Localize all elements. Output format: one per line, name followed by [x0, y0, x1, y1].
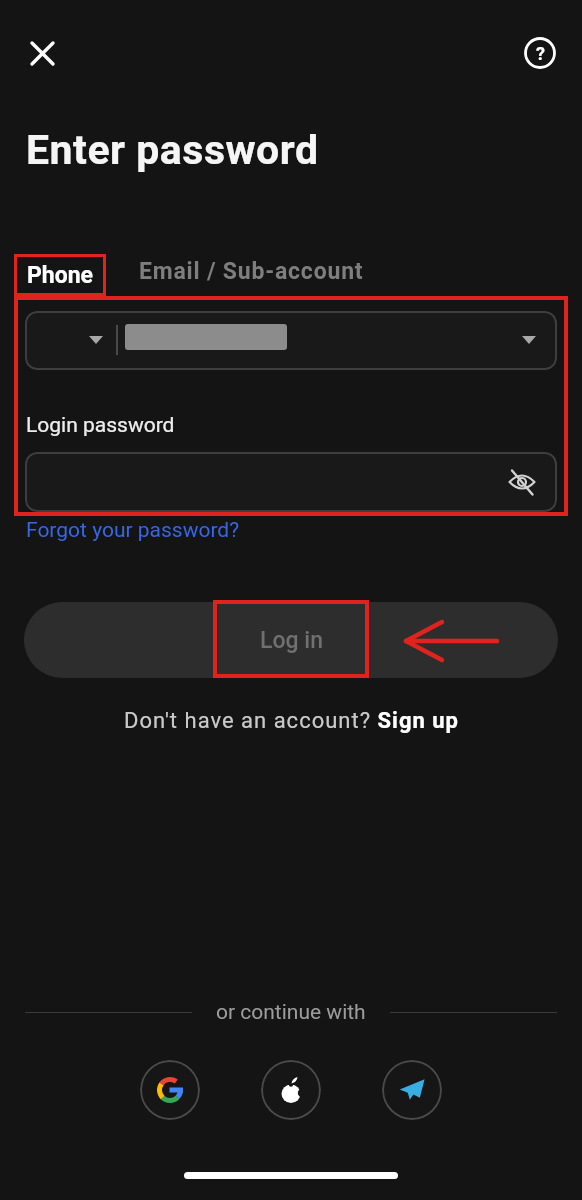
- staticText: Email / Sub-account: [139, 258, 364, 285]
- button[interactable]: ?: [522, 35, 558, 71]
- button[interactable]: Log in: [24, 602, 558, 678]
- button[interactable]: [140, 1060, 200, 1120]
- staticText: Log in: [260, 627, 323, 654]
- button[interactable]: Don't have an account? Sign up: [0, 708, 582, 734]
- staticText: Login password: [26, 413, 175, 438]
- button[interactable]: [25, 452, 557, 512]
- staticText: Forgot your password?: [26, 518, 240, 543]
- staticText: or continue with: [216, 1000, 366, 1024]
- staticText: Don't have an account? Sign up: [124, 708, 459, 734]
- button[interactable]: [261, 1060, 321, 1120]
- staticText: ?: [536, 43, 545, 64]
- button[interactable]: [382, 1060, 442, 1120]
- button[interactable]: [24, 35, 60, 71]
- button[interactable]: Phone: [14, 254, 106, 296]
- button[interactable]: [25, 311, 557, 370]
- button[interactable]: Email / Sub-account: [139, 258, 364, 285]
- staticText: Enter password: [26, 126, 319, 174]
- button[interactable]: Forgot your password?: [26, 518, 240, 543]
- staticText: Phone: [27, 262, 94, 289]
